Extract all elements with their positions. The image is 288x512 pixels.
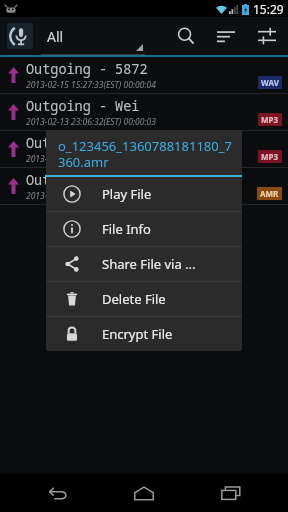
button[interactable]: Outgoing - 8301 (0, 131, 288, 168)
button[interactable]: App icon (7, 23, 33, 49)
staticText: 2013-02-15 15:27:33(EST) 00:00:04 (26, 79, 156, 91)
staticText: File Info (102, 220, 151, 238)
staticText: All (47, 27, 64, 46)
staticText: 2013-02-12 18:02:55(EST) 00:00:11 (26, 190, 156, 202)
button[interactable]: Outgoing - 5872 (0, 57, 288, 94)
button[interactable]: Encrypt File (46, 317, 242, 351)
button[interactable]: Home (114, 474, 174, 512)
staticText: AMR (260, 188, 279, 199)
staticText: Encrypt File (102, 325, 173, 343)
staticText: Play File (102, 185, 152, 203)
staticText: Outgoing - 5872 (26, 60, 148, 78)
button[interactable]: File Info (46, 212, 242, 246)
button[interactable]: Outgoing - 1360 (0, 168, 288, 205)
button[interactable]: Search (166, 17, 206, 55)
staticText: o_123456_1360788181180_7360.amr (58, 137, 232, 170)
button[interactable]: Share File via ... (46, 247, 242, 281)
staticText: MP3 (261, 114, 279, 125)
button[interactable]: Sort (206, 17, 246, 55)
button[interactable]: Settings (246, 17, 288, 55)
button[interactable]: All (41, 17, 145, 55)
staticText: WAV (261, 77, 279, 88)
staticText: Share File via ... (102, 255, 196, 273)
staticText: Outgoing - 8301 (26, 134, 148, 152)
staticText: Outgoing - Wei (26, 97, 140, 115)
button[interactable]: Outgoing - Wei (0, 94, 288, 131)
button[interactable]: Back (27, 474, 87, 512)
staticText: MP3 (261, 151, 279, 162)
staticText: 15:29 (253, 1, 284, 17)
button[interactable]: Delete File (46, 282, 242, 316)
button[interactable]: Play File (46, 177, 242, 211)
staticText: 2013-02-13 21:44:10(EST) 00:00:06 (26, 153, 156, 165)
staticText: Delete File (102, 290, 166, 308)
button[interactable]: Recent apps (201, 474, 261, 512)
staticText: Outgoing - 1360 (26, 171, 148, 189)
staticText: 2013-02-13 23:06:32(EST) 00:00:03 (26, 116, 156, 128)
